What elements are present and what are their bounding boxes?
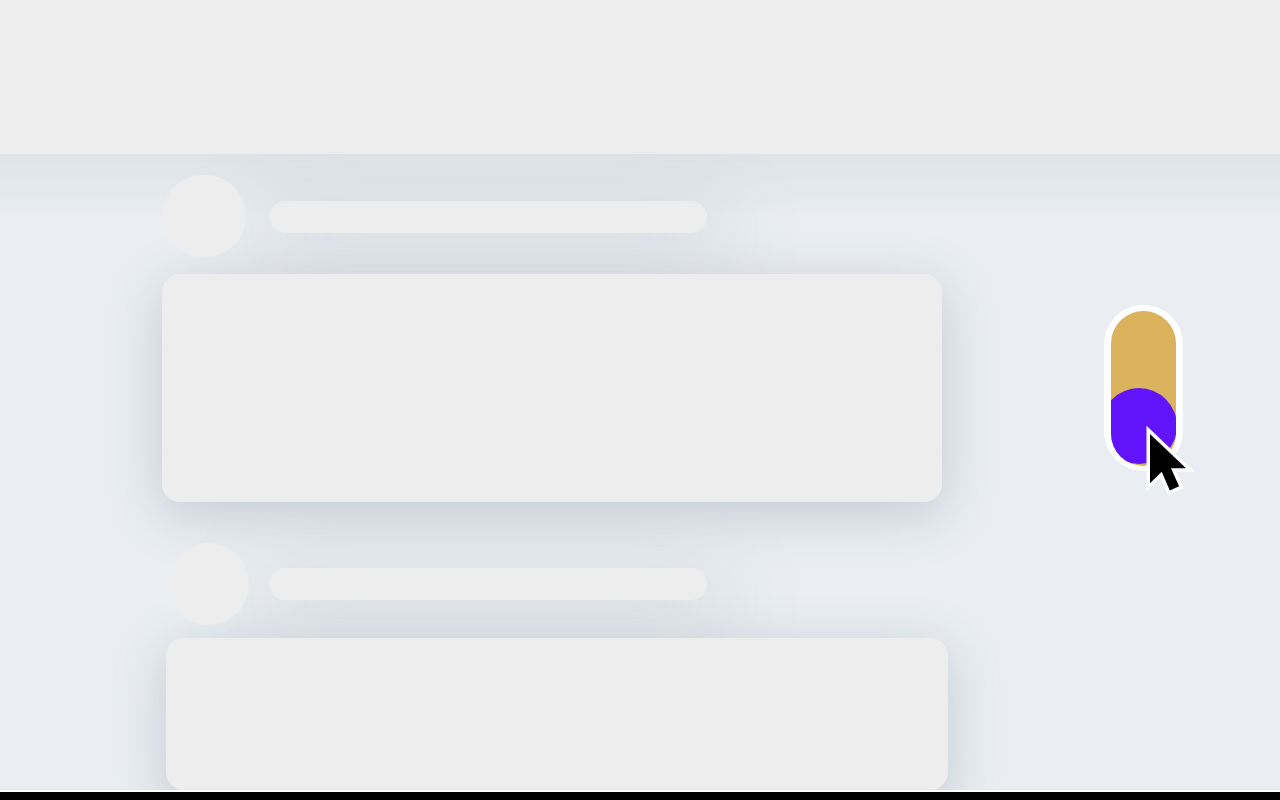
button[interactable]: Avatar placeholder (162, 175, 246, 257)
button[interactable]: Toggle switch (1104, 305, 1183, 471)
button[interactable]: Avatar placeholder (167, 543, 249, 625)
